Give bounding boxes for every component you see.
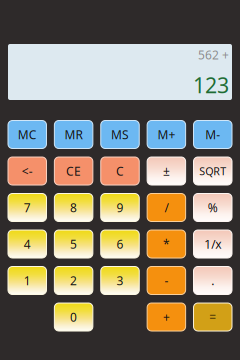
- button[interactable]: +: [147, 303, 186, 331]
- button[interactable]: 0: [54, 303, 93, 331]
- button[interactable]: 1: [8, 266, 46, 294]
- button[interactable]: =: [193, 303, 232, 331]
- button[interactable]: MC: [8, 120, 46, 148]
- staticText: /: [164, 199, 168, 215]
- button[interactable]: 9: [101, 193, 139, 221]
- button[interactable]: *: [147, 230, 186, 258]
- button[interactable]: M-: [193, 120, 232, 148]
- staticText: <-: [22, 163, 33, 179]
- button[interactable]: 1/x: [193, 230, 232, 258]
- staticText: 2: [70, 272, 77, 288]
- button[interactable]: 7: [8, 193, 46, 221]
- staticText: C: [116, 163, 124, 179]
- staticText: CE: [66, 163, 81, 179]
- staticText: M+: [157, 126, 175, 142]
- staticText: 6: [116, 236, 123, 252]
- staticText: 7: [24, 199, 31, 215]
- staticText: SQRT: [199, 164, 226, 178]
- button[interactable]: .: [193, 266, 232, 294]
- button[interactable]: C: [101, 157, 139, 185]
- button[interactable]: ±: [147, 157, 186, 185]
- staticText: 1/x: [204, 236, 221, 252]
- staticText: ±: [163, 163, 170, 179]
- staticText: .: [211, 272, 214, 288]
- button[interactable]: MR: [54, 120, 93, 148]
- staticText: +: [163, 309, 170, 325]
- staticText: 1: [24, 272, 31, 288]
- staticText: M-: [205, 126, 220, 142]
- staticText: 3: [116, 272, 123, 288]
- button[interactable]: 5: [54, 230, 93, 258]
- staticText: %: [208, 199, 218, 215]
- staticText: 123: [193, 71, 229, 99]
- staticText: 8: [70, 199, 77, 215]
- button[interactable]: 4: [8, 230, 46, 258]
- button[interactable]: MS: [101, 120, 139, 148]
- button[interactable]: <-: [8, 157, 46, 185]
- button[interactable]: 6: [101, 230, 139, 258]
- staticText: MS: [111, 126, 129, 142]
- staticText: 4: [24, 236, 31, 252]
- button[interactable]: 8: [54, 193, 93, 221]
- staticText: =: [209, 309, 216, 325]
- button[interactable]: -: [147, 266, 186, 294]
- button[interactable]: %: [193, 193, 232, 221]
- button[interactable]: SQRT: [193, 157, 232, 185]
- staticText: *: [163, 236, 170, 252]
- button[interactable]: 2: [54, 266, 93, 294]
- staticText: -: [164, 272, 168, 288]
- button[interactable]: 3: [101, 266, 139, 294]
- staticText: MC: [18, 126, 37, 142]
- staticText: MR: [65, 126, 83, 142]
- button[interactable]: CE: [54, 157, 93, 185]
- staticText: 0: [70, 309, 77, 325]
- staticText: 5: [70, 236, 77, 252]
- button[interactable]: M+: [147, 120, 186, 148]
- button[interactable]: /: [147, 193, 186, 221]
- staticText: 9: [116, 199, 123, 215]
- staticText: 562 +: [198, 47, 229, 63]
